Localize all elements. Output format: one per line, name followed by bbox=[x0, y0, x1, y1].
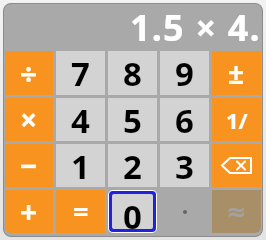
button[interactable]: 5 bbox=[108, 98, 157, 141]
staticText: + bbox=[20, 191, 38, 232]
button[interactable]: 1/ bbox=[212, 98, 261, 141]
button[interactable]: 7 bbox=[56, 51, 105, 95]
staticText: 4 bbox=[71, 98, 90, 141]
staticText: 1/ bbox=[226, 105, 248, 135]
staticText: 2 bbox=[123, 144, 142, 187]
button[interactable]: 3 bbox=[160, 144, 209, 187]
button[interactable]: ÷ bbox=[5, 51, 53, 95]
staticText: 9 bbox=[175, 51, 194, 95]
button[interactable]: 4 bbox=[56, 98, 105, 141]
staticText: 1.5 × 4. bbox=[130, 3, 261, 51]
staticText: 7 bbox=[71, 51, 90, 95]
staticText: ± bbox=[228, 54, 245, 92]
button[interactable] bbox=[212, 144, 261, 187]
button[interactable]: 6 bbox=[160, 98, 209, 141]
button[interactable]: + bbox=[5, 190, 53, 233]
staticText: 5 bbox=[123, 98, 142, 141]
staticText: 3 bbox=[175, 144, 194, 187]
button[interactable]: = bbox=[56, 190, 105, 233]
staticText: ÷ bbox=[20, 53, 38, 94]
button[interactable]: 9 bbox=[160, 51, 209, 95]
staticText: ≈ bbox=[226, 198, 247, 226]
button[interactable]: − bbox=[5, 144, 53, 187]
button[interactable]: ≈ bbox=[212, 190, 261, 233]
button[interactable]: × bbox=[5, 98, 53, 141]
button[interactable]: 2 bbox=[108, 144, 157, 187]
button[interactable]: 1 bbox=[56, 144, 105, 187]
staticText: 1 bbox=[71, 144, 90, 187]
staticText: × bbox=[20, 99, 38, 140]
button[interactable]: ± bbox=[212, 51, 261, 95]
staticText: − bbox=[20, 145, 38, 186]
staticText: 6 bbox=[175, 98, 194, 141]
staticText: = bbox=[73, 193, 89, 230]
button[interactable] bbox=[160, 190, 209, 233]
button[interactable]: 8 bbox=[108, 51, 157, 95]
staticText: 8 bbox=[123, 51, 142, 95]
staticText: 0 bbox=[123, 194, 142, 229]
button[interactable]: 0 bbox=[112, 194, 153, 229]
